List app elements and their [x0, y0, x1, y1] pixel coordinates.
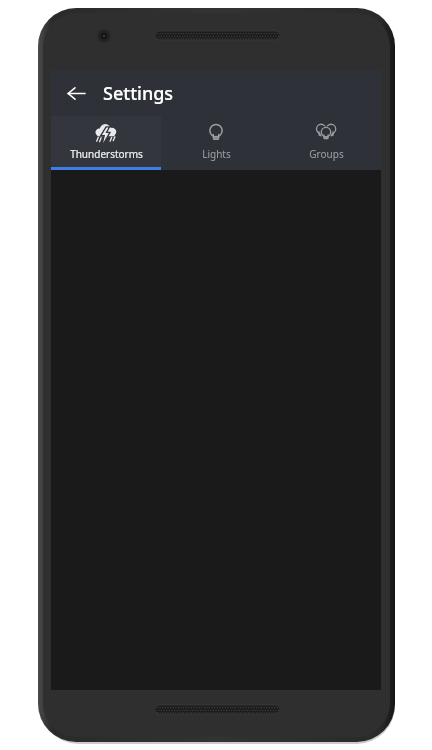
button[interactable]: Navigate up [57, 74, 95, 112]
staticText: Groups [309, 147, 344, 161]
staticText: Lights [202, 147, 231, 161]
button[interactable]: Lights [161, 116, 271, 170]
button[interactable]: Thunderstorms [51, 116, 161, 170]
button[interactable]: Groups [271, 116, 381, 170]
staticText: Thunderstorms [70, 147, 143, 161]
staticText: Settings [103, 81, 174, 106]
